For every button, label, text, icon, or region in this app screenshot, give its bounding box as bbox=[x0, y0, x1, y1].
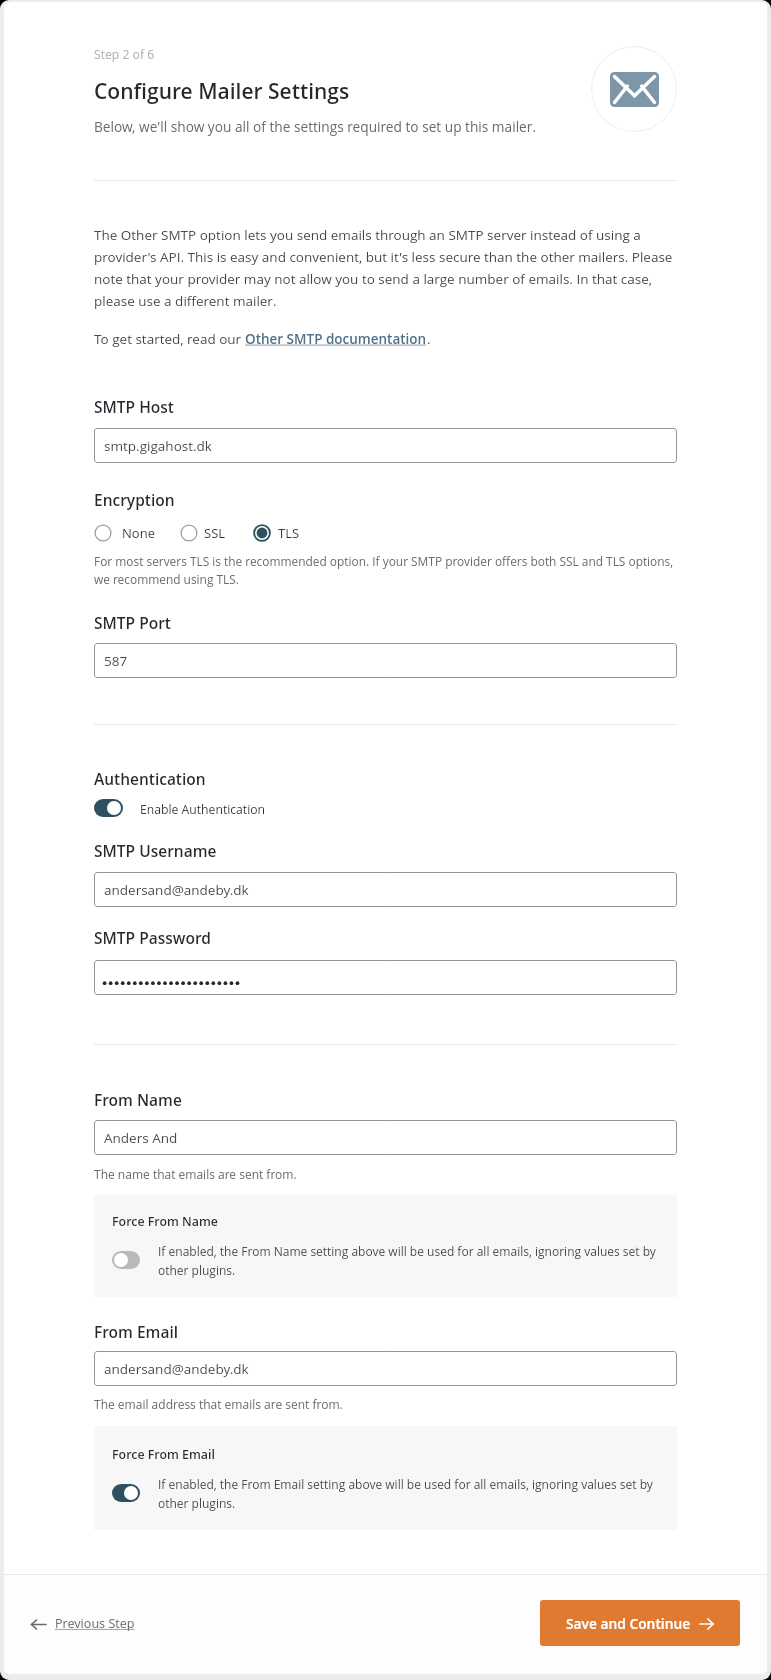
staticText: Previous Step bbox=[55, 1615, 135, 1632]
staticText: Authentication bbox=[94, 768, 206, 789]
button[interactable]: Enable Authentication bbox=[94, 799, 123, 817]
staticText: andersand@andeby.dk bbox=[104, 881, 249, 899]
staticText: The Other SMTP option lets you send emai… bbox=[94, 226, 677, 310]
button[interactable]: Toggle Force From Email bbox=[112, 1484, 140, 1502]
button[interactable]: andersand@andeby.dk bbox=[94, 872, 677, 907]
staticText: Enable Authentication bbox=[140, 801, 266, 818]
staticText: SMTP Port bbox=[94, 612, 171, 633]
staticText: If enabled, the From Name setting above … bbox=[158, 1243, 656, 1278]
staticText: Force From Email bbox=[112, 1446, 215, 1463]
staticText: SSL bbox=[204, 524, 226, 542]
staticText: Save and Continue bbox=[566, 1614, 691, 1633]
staticText: To get started, read our bbox=[94, 330, 245, 348]
staticText: Anders And bbox=[104, 1129, 178, 1147]
button[interactable]: Previous Step bbox=[31, 1615, 135, 1632]
staticText: andersand@andeby.dk bbox=[104, 1360, 249, 1378]
button[interactable]: andersand@andeby.dk bbox=[94, 1351, 677, 1386]
button[interactable]: Toggle Force From Name bbox=[112, 1251, 140, 1269]
staticText: SMTP Username bbox=[94, 840, 217, 861]
staticText: Configure Mailer Settings bbox=[94, 77, 350, 106]
other: Mailer bbox=[591, 46, 677, 132]
button[interactable]: SSL bbox=[176, 524, 232, 542]
staticText: None bbox=[122, 524, 155, 542]
staticText: Step 2 of 6 bbox=[94, 46, 155, 63]
staticText: For most servers TLS is the recommended … bbox=[94, 553, 681, 588]
staticText: Force From Name bbox=[112, 1213, 218, 1230]
button[interactable]: Anders And bbox=[94, 1120, 677, 1155]
staticText: TLS bbox=[278, 524, 300, 542]
staticText: Below, we'll show you all of the setting… bbox=[94, 117, 537, 136]
staticText: From Name bbox=[94, 1089, 182, 1110]
staticText: 587 bbox=[104, 652, 128, 670]
staticText: From Email bbox=[94, 1321, 179, 1342]
button[interactable]: TLS bbox=[249, 524, 306, 542]
staticText: SMTP Host bbox=[94, 396, 174, 417]
staticText: The name that emails are sent from. bbox=[94, 1166, 297, 1182]
staticText: Other SMTP documentation bbox=[245, 330, 427, 348]
staticText: SMTP Password bbox=[94, 927, 211, 948]
staticText: If enabled, the From Email setting above… bbox=[158, 1476, 653, 1511]
button[interactable]: smtp.gigahost.dk bbox=[94, 428, 677, 463]
staticText: smtp.gigahost.dk bbox=[104, 437, 212, 455]
staticText: The email address that emails are sent f… bbox=[94, 1396, 343, 1412]
button[interactable]: Save and Continue bbox=[540, 1600, 740, 1646]
button[interactable]: None bbox=[90, 524, 161, 542]
staticText: . bbox=[427, 330, 431, 348]
button[interactable]: 587 bbox=[94, 643, 677, 678]
staticText: Encryption bbox=[94, 489, 175, 510]
button[interactable] bbox=[94, 960, 677, 995]
button[interactable]: Other SMTP documentation bbox=[245, 330, 427, 348]
